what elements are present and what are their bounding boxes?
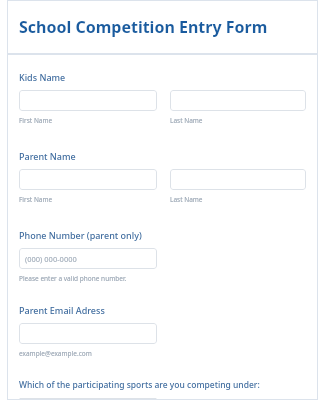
button[interactable]: (000) 000-0000 xyxy=(19,248,157,269)
staticText: Last Name xyxy=(170,116,203,125)
staticText: School Competition Entry Form xyxy=(19,16,268,38)
staticText: (000) 000-0000 xyxy=(25,254,77,264)
staticText: First Name xyxy=(19,116,53,125)
button[interactable] xyxy=(19,169,157,190)
staticText: Phone Number (parent only) xyxy=(19,229,142,241)
staticText: Kids Name xyxy=(19,71,66,83)
staticText: Last Name xyxy=(170,195,203,204)
staticText: Which of the participating sports are yo… xyxy=(19,379,260,391)
staticText: First Name xyxy=(19,195,53,204)
staticText: Parent Email Adress xyxy=(19,304,105,316)
staticText: example@example.com xyxy=(19,349,92,358)
button[interactable] xyxy=(19,90,157,111)
staticText: Parent Name xyxy=(19,150,76,162)
button[interactable] xyxy=(170,169,306,190)
button[interactable] xyxy=(19,323,157,344)
staticText: Please enter a valid phone number. xyxy=(19,274,127,283)
button[interactable] xyxy=(170,90,306,111)
